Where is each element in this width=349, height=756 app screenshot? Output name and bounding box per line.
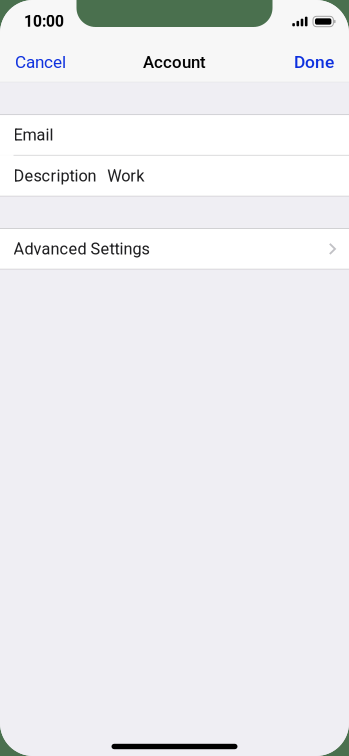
staticText: Account [143, 52, 206, 72]
button[interactable]: Email [0, 115, 349, 155]
staticText: 10:00 [24, 12, 64, 31]
staticText: Work [107, 166, 144, 185]
staticText: Done [294, 52, 334, 72]
staticText: Description [14, 166, 97, 185]
button[interactable]: Description [0, 156, 349, 196]
button[interactable]: Cancel [0, 42, 78, 82]
button[interactable]: Advanced Settings [0, 229, 349, 269]
staticText: Email [14, 125, 54, 145]
staticText: Advanced Settings [14, 239, 150, 258]
staticText: Cancel [15, 52, 66, 72]
button[interactable]: Done [282, 42, 349, 82]
